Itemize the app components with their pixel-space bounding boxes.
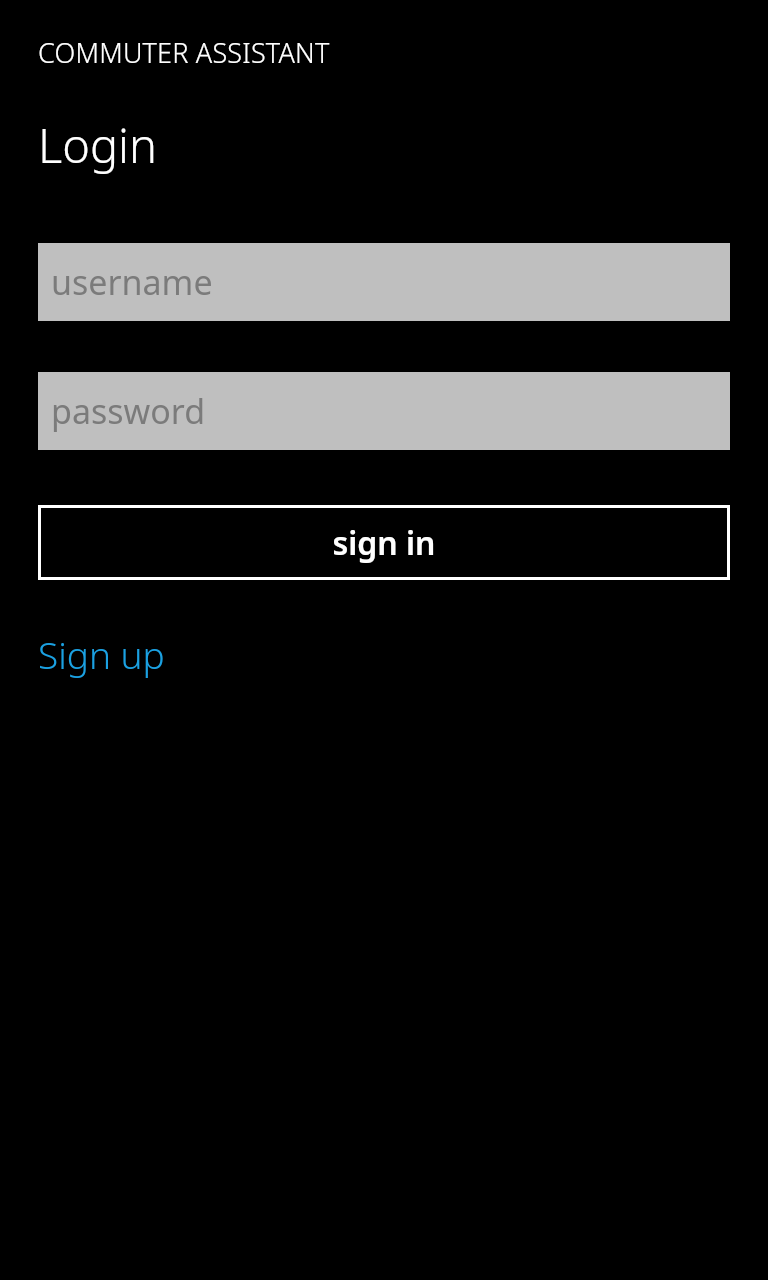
staticText: password <box>51 388 206 434</box>
staticText: COMMUTER ASSISTANT <box>38 34 330 71</box>
staticText: Login <box>38 113 157 177</box>
staticText: username <box>51 259 213 305</box>
staticText: Sign up <box>38 629 165 679</box>
button[interactable]: sign in <box>38 505 730 580</box>
staticText: sign in <box>332 521 436 565</box>
button[interactable]: username <box>38 243 730 321</box>
button[interactable]: Sign up <box>38 629 165 679</box>
button[interactable]: password <box>38 372 730 450</box>
